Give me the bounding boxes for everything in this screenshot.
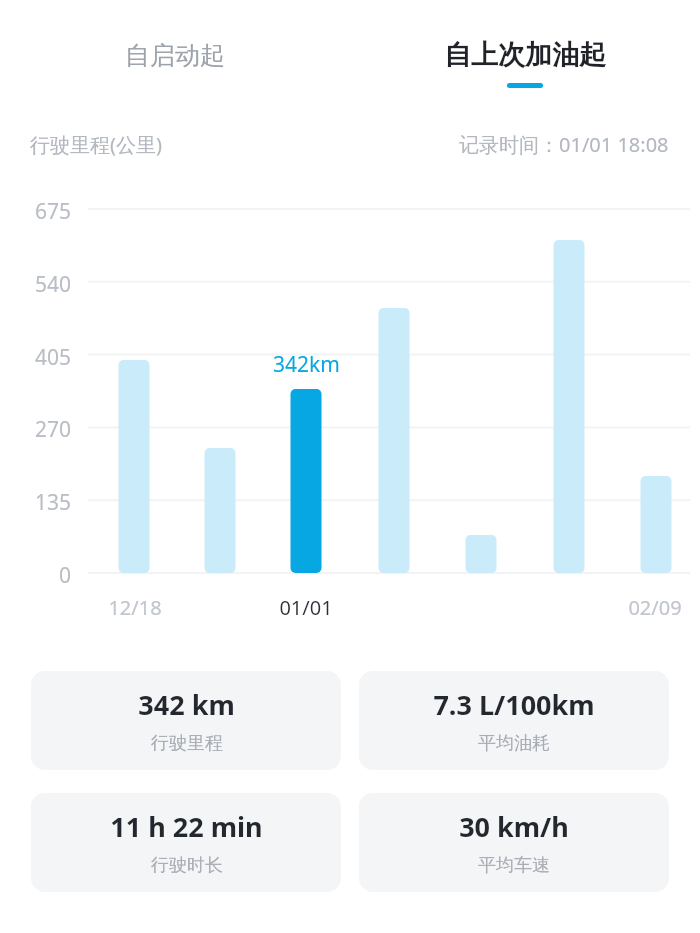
staticText: 记录时间：01/01 18:08 [459,131,669,158]
staticText: 平均油耗 [478,732,550,755]
staticText: 行驶里程 [151,732,223,755]
staticText: 02/09 [628,594,682,621]
staticText: 7.3 L/100km [433,686,595,723]
staticText: 自启动起 [125,40,225,71]
staticText: 12/18 [108,594,162,621]
staticText: 自上次加油起 [444,38,606,72]
staticText: 11 h 22 min [110,808,263,845]
staticText: 30 km/h [459,808,569,845]
button[interactable]: 11 h 22 min [31,793,341,892]
staticText: 平均车速 [478,854,550,877]
staticText: 675 [35,197,72,226]
button[interactable]: 30 km/h [359,793,669,892]
staticText: 135 [35,488,72,517]
button[interactable]: 自启动起 [0,0,350,110]
staticText: 01/01 [279,594,333,621]
staticText: 行驶时长 [151,854,223,877]
button[interactable]: 自上次加油起 [350,0,700,110]
staticText: 行驶里程(公里) [30,131,162,158]
staticText: 0 [59,561,72,590]
staticText: 540 [35,270,72,299]
staticText: 405 [35,343,72,372]
staticText: 342 km [138,686,235,723]
staticText: 342km [273,350,340,379]
button[interactable]: 342 km [31,671,341,770]
staticText: 270 [35,415,72,444]
button[interactable]: 7.3 L/100km [359,671,669,770]
